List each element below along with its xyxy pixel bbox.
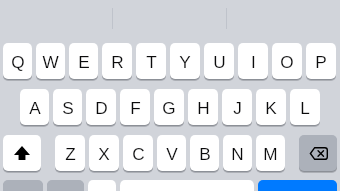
button[interactable]: F (120, 89, 150, 125)
staticText: B (199, 144, 211, 163)
button[interactable]: T (136, 43, 166, 79)
staticText: N (231, 144, 244, 163)
staticText: S (62, 98, 74, 117)
button[interactable]: space (120, 180, 254, 191)
button[interactable]: C (123, 135, 153, 171)
button[interactable]: M (256, 135, 285, 171)
button[interactable]: A (20, 89, 49, 125)
staticText: H (197, 98, 210, 117)
staticText: D (95, 98, 108, 117)
staticText: R (111, 52, 124, 71)
button[interactable]: R (102, 43, 132, 79)
staticText: P (315, 52, 327, 71)
button[interactable]: E (69, 43, 98, 79)
button[interactable]: I (238, 43, 268, 79)
staticText: L (300, 98, 310, 117)
staticText: M (263, 144, 278, 163)
button[interactable]: Y (170, 43, 200, 79)
staticText: C (132, 144, 145, 163)
staticText: I (251, 52, 256, 71)
button[interactable]: Backspace (299, 135, 337, 171)
button[interactable]: H (188, 89, 218, 125)
staticText: V (166, 144, 178, 163)
button[interactable]: K (256, 89, 286, 125)
button[interactable]: O (272, 43, 302, 79)
button[interactable]: return (258, 180, 337, 191)
button[interactable]: Numbers (3, 180, 43, 191)
button[interactable]: S (53, 89, 82, 125)
button[interactable]: X (89, 135, 119, 171)
button[interactable]: L (290, 89, 320, 125)
staticText: O (280, 52, 294, 71)
staticText: X (98, 144, 110, 163)
staticText: Y (179, 52, 191, 71)
staticText: Q (11, 52, 25, 71)
button[interactable]: W (36, 43, 65, 79)
staticText: K (265, 98, 277, 117)
staticText: J (233, 98, 242, 117)
button[interactable]: Z (55, 135, 85, 171)
button[interactable]: Shift (3, 135, 41, 171)
staticText: A (29, 98, 41, 117)
staticText: E (78, 52, 90, 71)
button[interactable]: G (154, 89, 184, 125)
staticText: U (213, 52, 226, 71)
staticText: W (42, 52, 59, 71)
button[interactable]: Next keyboard (47, 180, 84, 191)
button[interactable]: J (222, 89, 252, 125)
button[interactable]: V (157, 135, 186, 171)
button[interactable]: Emoji (88, 180, 116, 191)
staticText: Z (65, 144, 76, 163)
button[interactable]: D (86, 89, 116, 125)
staticText: T (146, 52, 157, 71)
staticText: G (162, 98, 176, 117)
button[interactable]: Q (3, 43, 32, 79)
button[interactable]: P (306, 43, 336, 79)
button[interactable]: U (204, 43, 234, 79)
button[interactable]: B (190, 135, 219, 171)
button[interactable]: N (223, 135, 252, 171)
staticText: F (130, 98, 141, 117)
